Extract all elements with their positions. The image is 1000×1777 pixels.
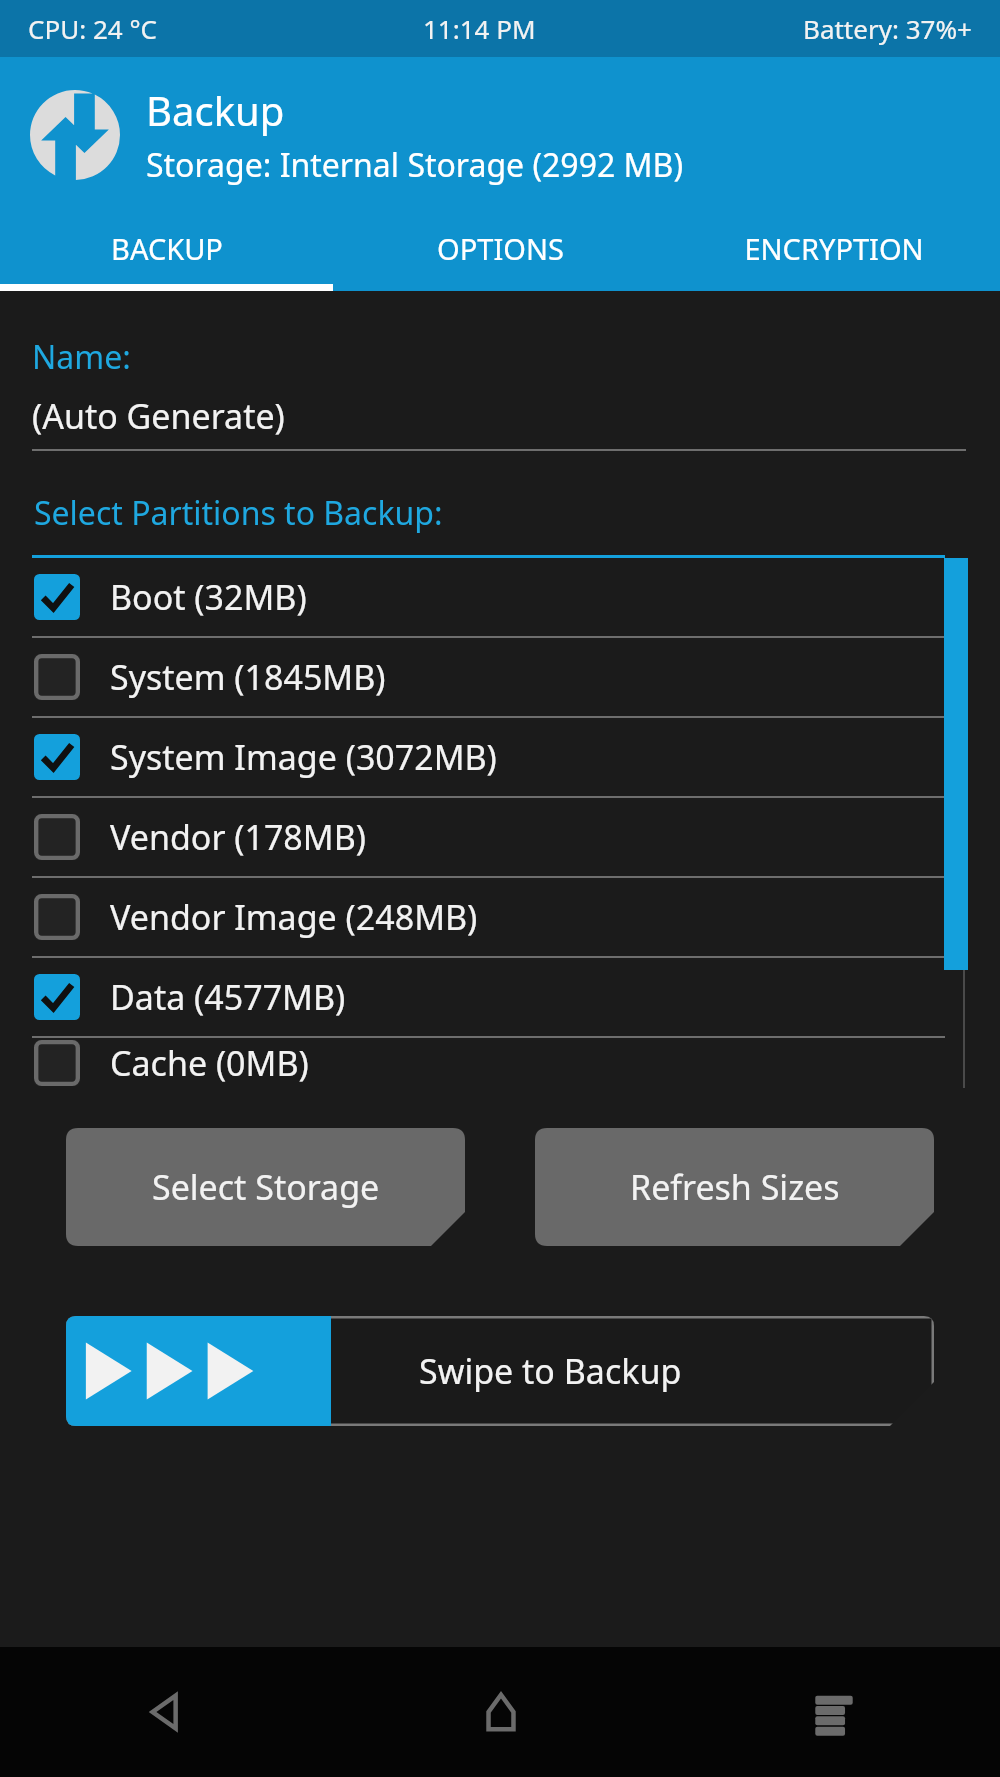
- button[interactable]: Vendor (178MB): [0, 798, 1000, 878]
- staticText: Select Partitions to Backup:: [34, 491, 443, 535]
- staticText: Name:: [32, 335, 131, 379]
- staticText: Backup: [146, 83, 285, 137]
- button[interactable]: Back: [0, 1647, 334, 1777]
- staticText: Refresh Sizes: [630, 1164, 840, 1210]
- button[interactable]: Boot (32MB): [0, 558, 1000, 638]
- staticText: Data (4577MB): [110, 974, 346, 1020]
- staticText: Boot (32MB): [110, 574, 307, 620]
- button[interactable]: Cache (0MB): [0, 1038, 1000, 1088]
- button[interactable]: BACKUP: [0, 212, 334, 284]
- button[interactable]: Refresh Sizes: [535, 1128, 934, 1246]
- button[interactable]: ENCRYPTION: [667, 212, 1000, 284]
- staticText: Storage: Internal Storage (2992 MB): [146, 143, 683, 187]
- staticText: Swipe to Backup: [419, 1348, 682, 1394]
- button[interactable]: System Image (3072MB): [0, 718, 1000, 798]
- staticText: Vendor (178MB): [110, 814, 366, 860]
- staticText: (Auto Generate): [32, 393, 285, 439]
- staticText: Battery: 37%+: [803, 11, 972, 46]
- button[interactable]: Home: [334, 1647, 667, 1777]
- staticText: Vendor Image (248MB): [110, 894, 478, 940]
- button[interactable]: Swipe to Backup: [66, 1316, 934, 1426]
- staticText: CPU: 24 °C: [28, 11, 157, 46]
- button[interactable]: (Auto Generate): [32, 393, 966, 451]
- button[interactable]: Select Storage: [66, 1128, 465, 1246]
- button[interactable]: Menu: [667, 1647, 1000, 1777]
- staticText: System Image (3072MB): [110, 734, 497, 780]
- staticText: Select Storage: [152, 1164, 380, 1210]
- staticText: BACKUP: [111, 229, 223, 268]
- button[interactable]: System (1845MB): [0, 638, 1000, 718]
- staticText: OPTIONS: [437, 229, 564, 268]
- staticText: ENCRYPTION: [744, 229, 924, 268]
- button[interactable]: Vendor Image (248MB): [0, 878, 1000, 958]
- staticText: Cache (0MB): [110, 1040, 309, 1086]
- staticText: 11:14 PM: [423, 11, 536, 46]
- button[interactable]: OPTIONS: [334, 212, 667, 284]
- button[interactable]: Data (4577MB): [0, 958, 1000, 1038]
- staticText: System (1845MB): [110, 654, 386, 700]
